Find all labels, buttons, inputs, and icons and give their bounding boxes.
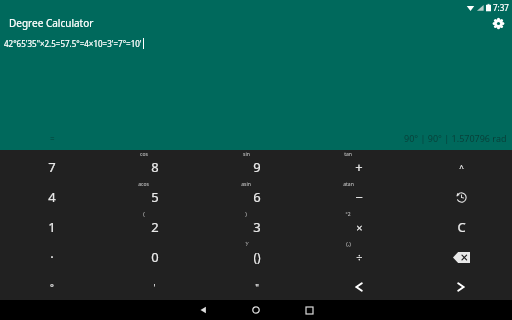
button[interactable]: 0 <box>103 240 206 270</box>
button[interactable]: (,) <box>308 240 410 270</box>
button[interactable]: tan <box>308 150 410 180</box>
staticText: atan <box>343 181 354 188</box>
staticText: ¹⁄ <box>245 241 248 248</box>
button[interactable]: cos <box>103 150 206 180</box>
button[interactable]: · <box>0 240 103 270</box>
staticText: ÷ <box>356 250 363 265</box>
button[interactable]: asin <box>206 180 308 210</box>
button[interactable]: 7 <box>0 150 103 180</box>
staticText: 9 <box>253 158 261 176</box>
button[interactable]: Back <box>188 300 218 320</box>
staticText: 2 <box>151 218 159 236</box>
staticText: − <box>355 188 363 206</box>
button[interactable]: °2 <box>308 210 410 240</box>
staticText: = <box>50 133 55 144</box>
button[interactable]: ) <box>206 210 308 240</box>
button[interactable]: 1 <box>0 210 103 240</box>
staticText: 90° | 90° | 1.570796 rad <box>404 132 507 144</box>
staticText: 7 <box>48 158 56 176</box>
staticText: ( <box>143 211 145 218</box>
button[interactable]: C <box>410 210 512 240</box>
staticText: · <box>50 248 54 266</box>
button[interactable]: " <box>206 270 308 300</box>
staticText: 5 <box>151 188 159 206</box>
staticText: sin <box>243 151 250 158</box>
staticText: 0 <box>151 248 159 266</box>
staticText: °2 <box>345 211 351 218</box>
staticText: ' <box>153 281 156 293</box>
staticText: asin <box>241 181 251 188</box>
staticText: 6 <box>253 188 261 206</box>
staticText: 8 <box>151 158 159 176</box>
staticText: × <box>356 220 363 235</box>
staticText: " <box>255 281 259 293</box>
staticText: 4 <box>48 188 56 206</box>
staticText: + <box>355 158 363 176</box>
button[interactable]: ( <box>103 210 206 240</box>
staticText: () <box>253 249 261 265</box>
button[interactable]: Recent apps <box>294 300 324 320</box>
button[interactable]: Home <box>241 300 271 320</box>
button[interactable]: ° <box>0 270 103 300</box>
button[interactable]: Backspace <box>410 240 512 270</box>
staticText: Degree Calculator <box>9 16 94 30</box>
button[interactable]: History <box>410 180 512 210</box>
staticText: 42°65'35"×2.5=57.5°=4×10=3'=7°=10' <box>4 38 142 49</box>
button[interactable]: ' <box>103 270 206 300</box>
staticText: cos <box>140 151 148 158</box>
staticText: ) <box>245 211 247 218</box>
staticText: 3 <box>253 218 261 236</box>
staticText: (,) <box>346 241 351 248</box>
button[interactable]: Move cursor right <box>410 270 512 300</box>
staticText: 7:37 <box>493 2 509 13</box>
button[interactable]: 4 <box>0 180 103 210</box>
button[interactable]: atan <box>308 180 410 210</box>
staticText: ^ <box>459 162 464 173</box>
button[interactable]: Move cursor left <box>308 270 410 300</box>
button[interactable]: ^ <box>410 150 512 180</box>
staticText: ° <box>50 281 54 293</box>
button[interactable]: ¹⁄ <box>206 240 308 270</box>
button[interactable]: Settings <box>489 14 507 32</box>
staticText: acos <box>138 181 149 188</box>
staticText: 1 <box>48 218 56 236</box>
staticText: C <box>457 218 466 236</box>
button[interactable]: sin <box>206 150 308 180</box>
button[interactable]: acos <box>103 180 206 210</box>
staticText: tan <box>344 151 352 158</box>
